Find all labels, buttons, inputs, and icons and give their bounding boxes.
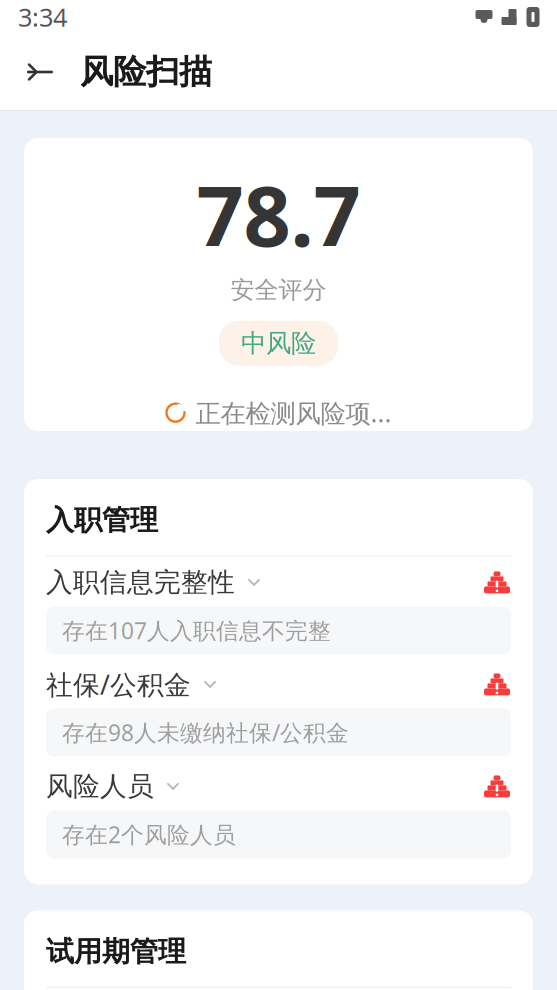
staticText: 社保/公积金 [46, 667, 191, 702]
staticText: 入职信息完整性 [46, 566, 235, 599]
staticText: 存在107人入职信息不完整 [62, 615, 331, 645]
staticText: 风险人员 [46, 770, 154, 803]
staticText: 风险扫描 [80, 51, 212, 92]
staticText: 78.7 [196, 159, 360, 269]
staticText: 中风险 [241, 328, 316, 359]
button[interactable]: 风险人员 [46, 764, 511, 808]
button[interactable]: 返回 [18, 50, 62, 94]
staticText: 正在检测风险项... [195, 396, 391, 429]
staticText: 存在2个风险人员 [62, 819, 236, 849]
button[interactable]: 入职信息完整性 [46, 560, 511, 604]
button[interactable]: 社保/公积金 [46, 662, 511, 706]
staticText: 3:34 [18, 0, 67, 34]
staticText: 安全评分 [230, 275, 326, 305]
staticText: 入职管理 [46, 503, 158, 537]
staticText: 存在98人未缴纳社保/公积金 [62, 717, 349, 747]
staticText: 试用期管理 [46, 934, 186, 969]
